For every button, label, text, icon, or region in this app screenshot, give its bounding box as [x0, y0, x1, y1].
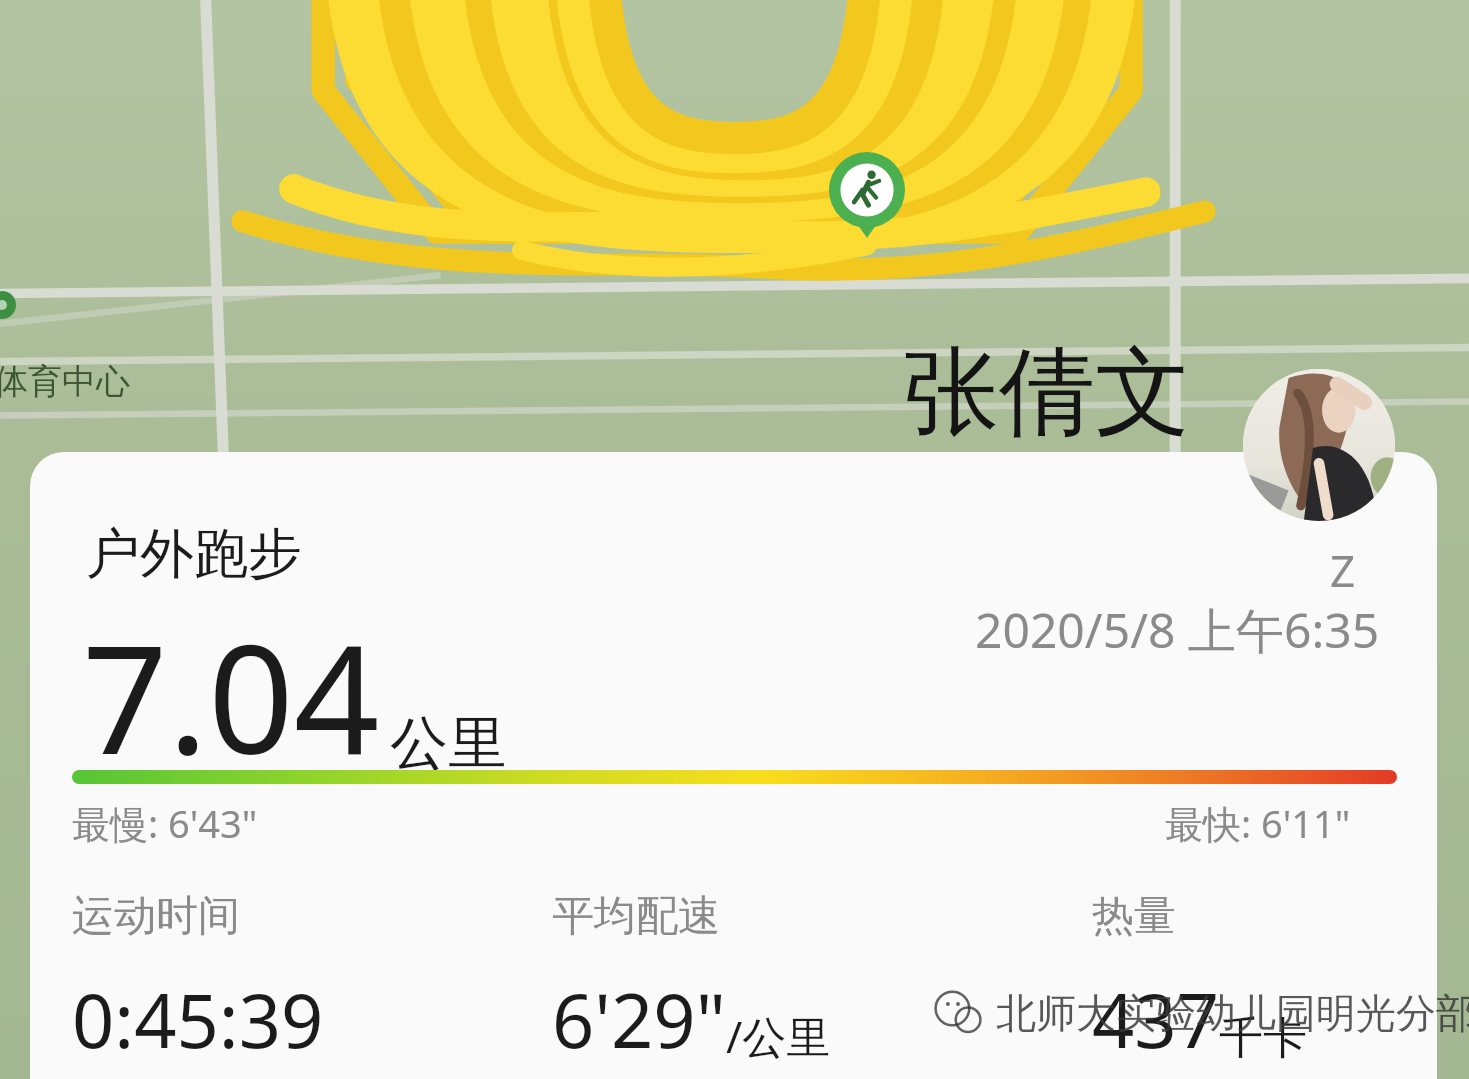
- staticText: 最慢: 6'43": [72, 797, 258, 849]
- staticText: 最快: 6'11": [1165, 797, 1351, 849]
- staticText: /公里: [726, 1006, 831, 1066]
- staticText: 张倩文: [903, 333, 1191, 454]
- staticText: 0:45:39: [72, 969, 324, 1070]
- staticText: 7.04: [82, 594, 380, 798]
- staticText: Z: [1330, 540, 1356, 600]
- button[interactable]: Run location marker: [829, 152, 905, 238]
- staticText: 2020/5/8 上午6:35: [975, 597, 1380, 663]
- staticText: 6'29": [552, 969, 726, 1070]
- staticText: 热量: [1092, 890, 1176, 943]
- staticText: 平均配速: [552, 890, 720, 943]
- staticText: 户外跑步: [86, 520, 302, 588]
- button[interactable]: 热量: [1092, 890, 1437, 1070]
- staticText: 437: [1092, 969, 1219, 1070]
- button[interactable]: 平均配速: [552, 890, 992, 1070]
- button[interactable]: Profile photo: [1243, 369, 1395, 521]
- staticText: 北师大实验幼儿园明光分部: [996, 988, 1469, 1038]
- staticText: 体育中心: [0, 360, 130, 403]
- staticText: 公里: [390, 707, 506, 780]
- button[interactable]: 运动时间: [72, 890, 512, 1070]
- staticText: 运动时间: [72, 890, 240, 943]
- staticText: 千卡: [1219, 1011, 1307, 1066]
